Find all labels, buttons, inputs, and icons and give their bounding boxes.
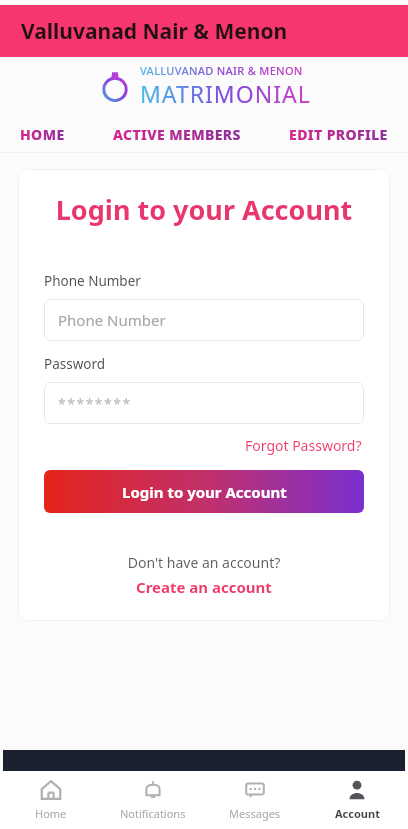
staticText: Valluvanad Nair & Menon <box>21 17 288 46</box>
button[interactable]: Home <box>0 771 102 829</box>
staticText: MATRIMONIAL <box>140 78 311 109</box>
button[interactable]: EDIT PROFILE <box>285 119 392 150</box>
staticText: Account <box>335 806 380 821</box>
staticText: Messages <box>229 806 281 821</box>
button[interactable]: ******** <box>44 382 364 424</box>
staticText: ******** <box>58 394 132 413</box>
button[interactable]: HOME <box>16 119 69 150</box>
button[interactable]: ACTIVE MEMBERS <box>109 119 245 150</box>
staticText: Login to your Account <box>122 482 287 502</box>
staticText: EDIT PROFILE <box>289 125 388 144</box>
staticText: Password <box>44 355 106 373</box>
button[interactable]: Login to your Account <box>44 470 364 513</box>
staticText: Notifications <box>120 806 186 821</box>
button[interactable]: Create an account <box>132 575 276 599</box>
staticText: Phone Number <box>44 272 141 290</box>
button[interactable]: Account <box>306 771 408 829</box>
staticText: ACTIVE MEMBERS <box>113 125 241 144</box>
button[interactable]: Messages <box>204 771 306 829</box>
button[interactable]: Forgot Password? <box>243 434 364 457</box>
staticText: HOME <box>20 125 65 144</box>
staticText: Forgot Password? <box>245 436 362 455</box>
button[interactable]: Notifications <box>102 771 204 829</box>
button[interactable]: Phone Number <box>44 299 364 341</box>
staticText: Don't have an account? <box>44 553 364 572</box>
staticText: Home <box>35 806 67 821</box>
staticText: Create an account <box>136 577 272 597</box>
staticText: VALLUVANAD NAIR & MENON <box>140 63 303 78</box>
staticText: Phone Number <box>58 310 166 330</box>
staticText: Login to your Account <box>44 191 364 228</box>
